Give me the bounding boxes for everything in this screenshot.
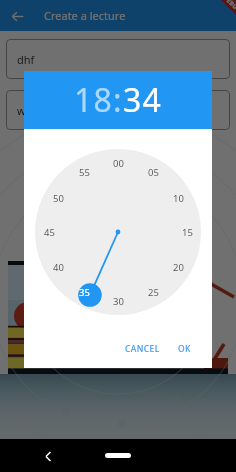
staticText: 45 bbox=[44, 226, 55, 239]
button[interactable]: dhf bbox=[6, 39, 230, 79]
button[interactable]: 35 bbox=[73, 285, 95, 299]
button[interactable]: OK bbox=[170, 337, 199, 361]
staticText: 00 bbox=[113, 157, 124, 170]
button[interactable]: 50 bbox=[47, 191, 69, 205]
button[interactable]: 40 bbox=[47, 260, 69, 274]
button[interactable]: Back bbox=[4, 3, 30, 29]
staticText: 05 bbox=[148, 166, 159, 179]
staticText: DEBUG bbox=[221, 0, 236, 15]
staticText: dhf bbox=[17, 52, 35, 67]
button[interactable]: Home bbox=[105, 453, 131, 458]
staticText: 55 bbox=[79, 166, 90, 179]
staticText: OK bbox=[178, 343, 191, 355]
button[interactable]: 05 bbox=[142, 165, 164, 179]
staticText: 25 bbox=[148, 286, 159, 299]
button[interactable]: 45 bbox=[38, 225, 60, 239]
staticText: 10 bbox=[173, 192, 184, 205]
staticText: 20 bbox=[173, 261, 184, 274]
button[interactable]: Back bbox=[40, 448, 56, 464]
staticText: 30 bbox=[113, 295, 124, 308]
button[interactable]: 25 bbox=[142, 285, 164, 299]
staticText: 18: bbox=[74, 78, 123, 122]
staticText: 40 bbox=[53, 261, 64, 274]
button[interactable]: 10 bbox=[167, 191, 189, 205]
button[interactable]: 55 bbox=[73, 165, 95, 179]
staticText: w bbox=[17, 103, 26, 118]
staticText: CANCEL bbox=[125, 343, 160, 355]
staticText: 35 bbox=[79, 286, 90, 299]
button[interactable]: 20 bbox=[167, 260, 189, 274]
staticText: 15 bbox=[182, 226, 193, 239]
staticText: 50 bbox=[53, 192, 64, 205]
button[interactable]: 30 bbox=[107, 294, 129, 308]
button[interactable]: CANCEL bbox=[117, 337, 168, 361]
button[interactable]: 00 bbox=[107, 156, 129, 170]
button[interactable]: w bbox=[6, 90, 230, 130]
button[interactable]: 15 bbox=[176, 225, 198, 239]
staticText: 34 bbox=[123, 78, 163, 122]
staticText: Create a lecture bbox=[44, 8, 126, 23]
